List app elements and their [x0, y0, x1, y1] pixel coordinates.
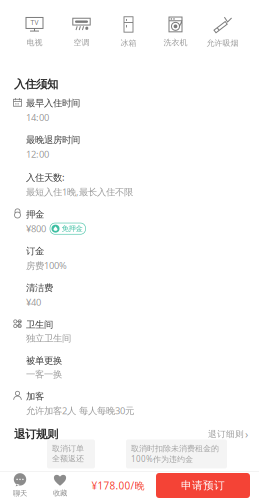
staticText: 卫生间	[26, 319, 53, 331]
staticText: 最早入住时间	[26, 97, 80, 109]
button[interactable]: 申请预订	[156, 473, 250, 498]
staticText: 冰箱	[120, 38, 136, 48]
staticText: 允许加客2人 每人每晚30元	[26, 404, 134, 417]
staticText: 退订细则	[208, 429, 244, 440]
staticText: ¥800	[26, 222, 46, 235]
staticText: 洗衣机	[163, 37, 187, 48]
button[interactable]: TV	[11, 15, 58, 49]
staticText: 电视	[26, 37, 42, 48]
button[interactable]: 聊天	[0, 471, 40, 499]
staticText: 入住天数:	[26, 171, 65, 183]
staticText: 14:00	[26, 111, 49, 124]
button[interactable]: 洗衣机	[152, 15, 199, 49]
staticText: 12:00	[26, 148, 49, 160]
staticText: 加客	[26, 390, 44, 402]
staticText: 订金	[26, 245, 44, 257]
staticText: 取消时扣除未消费租金的100%作为违约金	[131, 443, 219, 464]
staticText: ¥40	[26, 296, 41, 308]
staticText: 退订规则	[14, 427, 58, 441]
staticText: 押金	[26, 208, 44, 220]
staticText: 收藏	[53, 488, 67, 498]
staticText: 清洁费	[26, 282, 53, 294]
staticText: 房费100%	[26, 259, 67, 272]
staticText: 独立卫生间	[26, 333, 71, 344]
staticText: ¥178.00/晚	[91, 479, 144, 492]
staticText: 入住须知	[14, 77, 58, 91]
staticText: 申请预订	[181, 479, 225, 492]
staticText: ›	[245, 427, 248, 441]
button[interactable]: 收藏	[40, 471, 80, 499]
staticText: 最短入住1晚,最长入住不限	[26, 185, 133, 198]
staticText: 最晚退房时间	[26, 134, 80, 146]
button[interactable]: 允许吸烟	[199, 15, 246, 49]
staticText: 一客一换	[26, 368, 62, 380]
button[interactable]: 退订细则	[208, 427, 248, 441]
button[interactable]: 冰箱	[105, 15, 152, 49]
staticText: TV	[30, 18, 38, 27]
staticText: 取消订单 全额返还	[52, 443, 84, 464]
staticText: 允许吸烟	[206, 38, 238, 48]
staticText: 被单更换	[26, 355, 62, 366]
staticText: 免押金	[61, 224, 82, 233]
staticText: 聊天	[13, 489, 27, 498]
button[interactable]: 空调	[58, 15, 105, 49]
staticText: 空调	[73, 37, 89, 48]
